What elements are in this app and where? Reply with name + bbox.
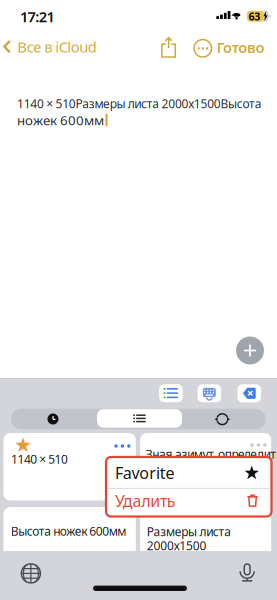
staticText: Размеры листа [147, 523, 231, 539]
button[interactable]: Clipboard list [159, 384, 183, 402]
staticText: 1140 × 510 [11, 451, 68, 467]
staticText: ножек 600мм [17, 111, 104, 129]
button[interactable]: Высота ножек 600мм [3, 507, 136, 574]
staticText: Высота ножек 600мм [11, 523, 126, 539]
button[interactable]: Sync [180, 408, 264, 430]
button[interactable]: Delete [237, 384, 261, 402]
staticText: Favorite [115, 462, 175, 483]
button[interactable]: More [191, 36, 215, 60]
button[interactable]: Dictate [230, 555, 264, 589]
button[interactable]: Pinned list [97, 409, 182, 428]
button[interactable]: Готово [206, 34, 264, 60]
button[interactable]: Share [157, 34, 181, 60]
button[interactable]: Back [3, 34, 97, 60]
button[interactable]: New note [236, 336, 264, 364]
staticText: 1140 × 510Размеры листа 2000х1500Высота [17, 95, 262, 111]
staticText: Все в iCloud [17, 37, 97, 56]
staticText: Зная азимут, определить [146, 446, 277, 462]
staticText: Удалить [115, 490, 176, 511]
button[interactable]: Размеры листа [140, 507, 271, 574]
staticText: 2000х1500 [147, 537, 206, 553]
button[interactable]: 1140 × 510 [3, 433, 136, 500]
button[interactable]: History [11, 408, 95, 430]
button[interactable]: Favorite [108, 458, 269, 487]
staticText: 17:21 [20, 7, 54, 26]
button[interactable]: Next keyboard [14, 556, 48, 590]
button[interactable]: Удалить [108, 487, 269, 514]
button[interactable]: Keyboard [198, 384, 221, 402]
staticText: 63 [248, 9, 260, 23]
button[interactable]: Зная азимут, определить [140, 433, 271, 500]
staticText: Готово [216, 38, 264, 57]
